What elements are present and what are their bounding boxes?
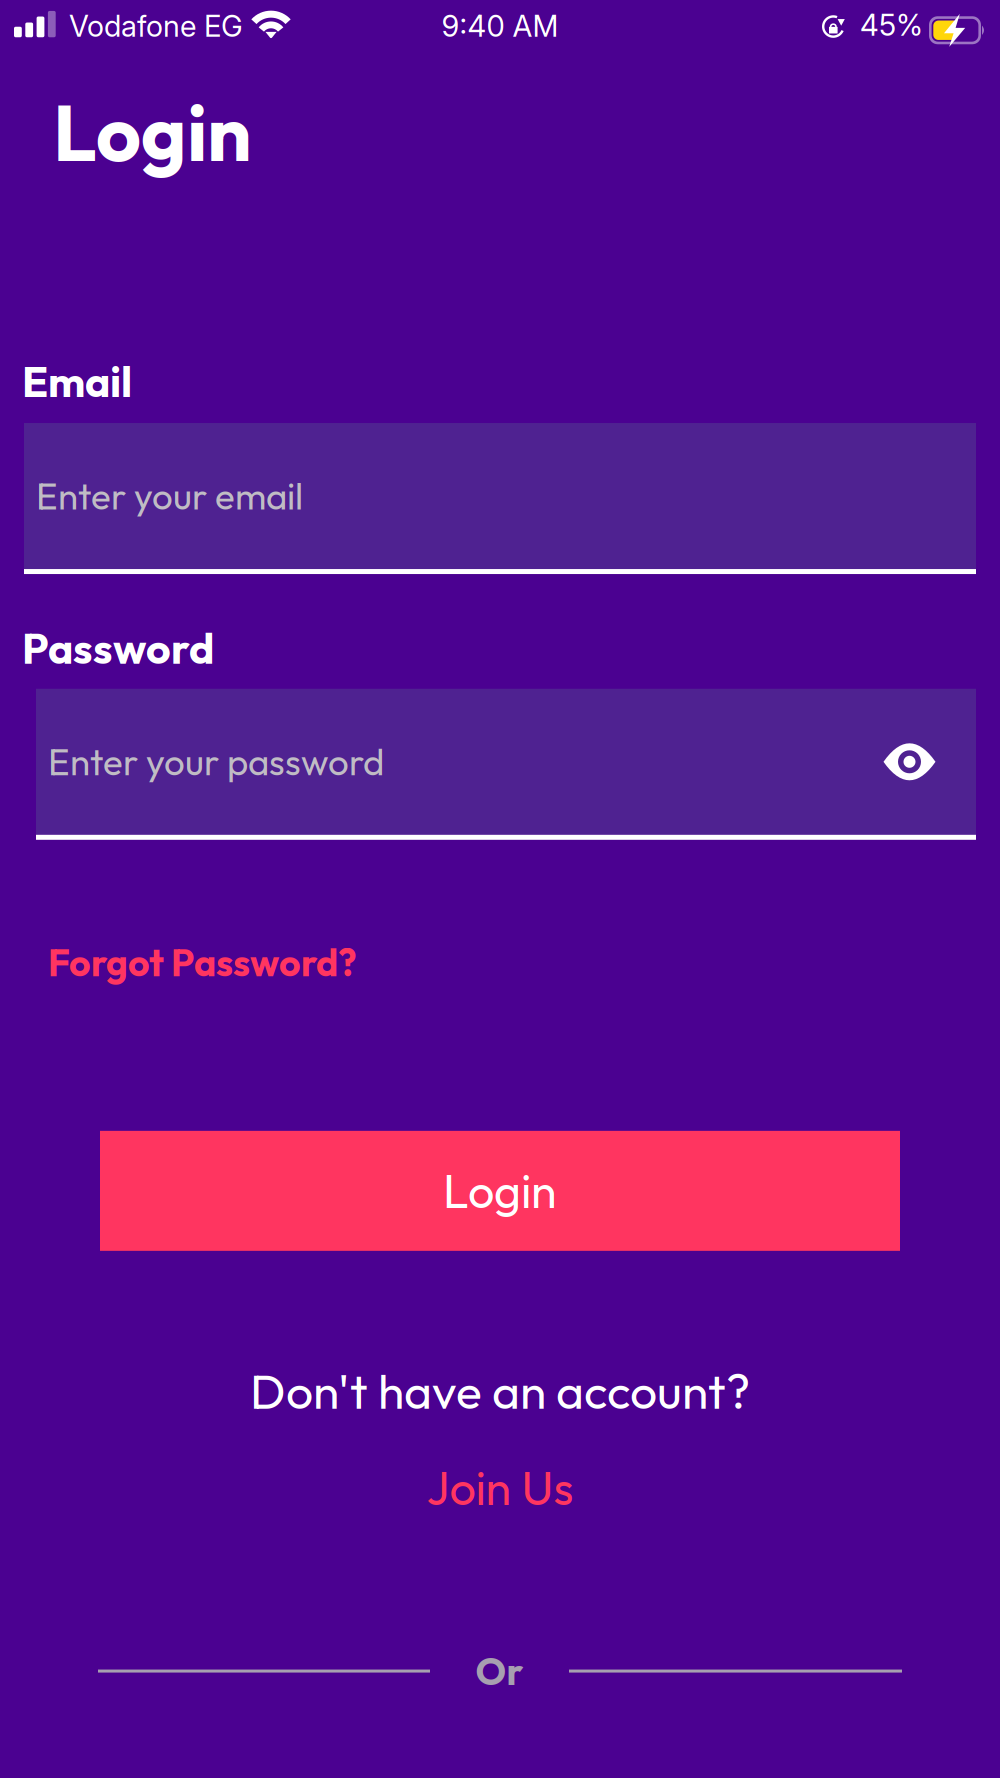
staticText: Login [443, 1161, 557, 1220]
staticText: 45% [860, 7, 923, 43]
button[interactable]: Join Us [426, 1421, 573, 1517]
staticText: Vodafone EG [69, 8, 243, 44]
button[interactable]: Show password [863, 735, 936, 788]
staticText: Password [22, 621, 214, 675]
staticText: Or [475, 1647, 523, 1695]
button[interactable]: Forgot Password? [0, 840, 357, 994]
staticText: 9:40 AM [441, 8, 558, 44]
staticText: Enter your password [48, 739, 384, 785]
staticText: Forgot Password? [48, 939, 357, 986]
staticText: Email [22, 354, 132, 408]
staticText: Enter your email [36, 473, 303, 519]
staticText: Login [53, 83, 252, 181]
button[interactable]: Login [100, 1131, 900, 1251]
staticText: Join Us [426, 1458, 573, 1517]
staticText: Don't have an account? [250, 1361, 750, 1421]
